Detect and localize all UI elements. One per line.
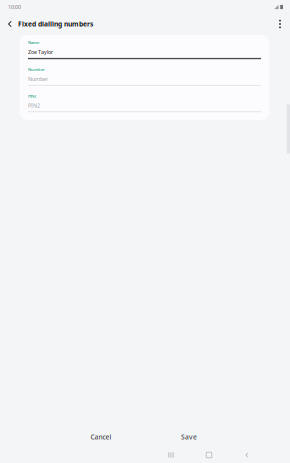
- staticText: 10:00: [8, 3, 21, 11]
- staticText: Fixed dialling numbers: [18, 20, 93, 28]
- button[interactable]: Back: [2, 16, 18, 32]
- button[interactable]: More options: [272, 16, 288, 32]
- button[interactable]: Back: [230, 447, 264, 463]
- staticText: Save: [181, 433, 197, 441]
- staticText: PIN2: [28, 93, 36, 99]
- button[interactable]: Home: [192, 447, 226, 463]
- button[interactable]: Recents: [154, 447, 188, 463]
- button[interactable]: Cancel: [72, 427, 130, 447]
- button[interactable]: Save: [160, 427, 218, 447]
- staticText: Number: [28, 67, 45, 72]
- staticText: Name: [28, 40, 39, 45]
- staticText: Zoe Taylor: [28, 48, 53, 56]
- staticText: PIN2: [28, 102, 40, 109]
- staticText: Number: [28, 75, 48, 83]
- staticText: Cancel: [90, 433, 111, 441]
